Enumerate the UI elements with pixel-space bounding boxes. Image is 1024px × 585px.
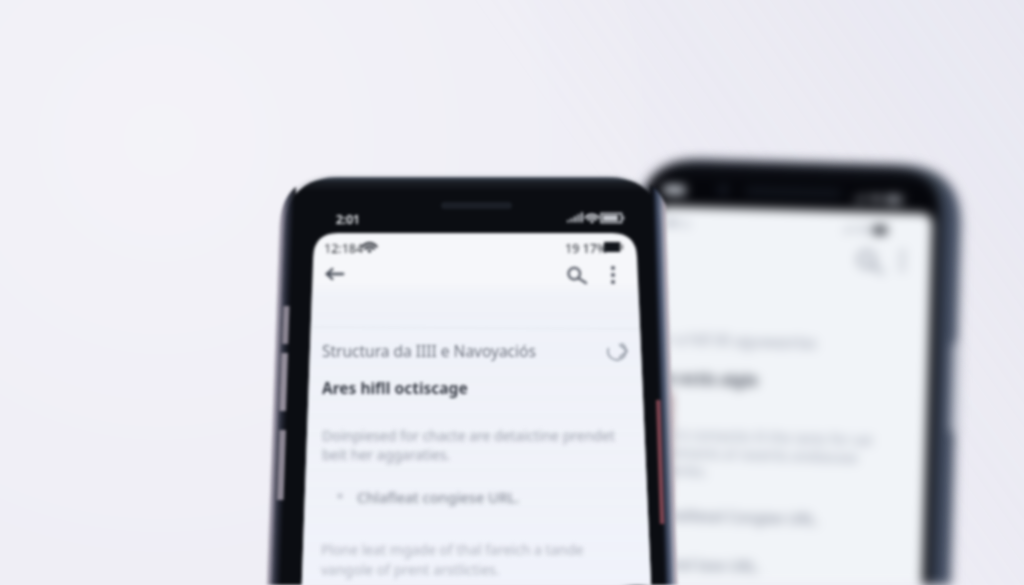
staticText: 19 17% [565,240,608,257]
staticText: ttienel laxe URL. [649,553,761,576]
staticText: Ares hifll octiscage [322,377,468,398]
staticText: ions is comactio ili the iants for sat i… [645,424,874,485]
staticText: Structura da IIII e Navoyaciós [322,340,536,361]
staticText: or a hill lill aguwasrlas [656,327,817,352]
staticText: Doinpiesed for chacte are detaictine pre… [322,426,615,464]
staticText: 2:01 [336,211,360,227]
button[interactable]: Phones photo [0,0,1024,585]
staticText: Chlafleat congiese URL. [357,487,520,507]
staticText: Plone leat mgade of thal fareich a tande… [321,540,584,580]
staticText: Onelleeal Congiee URL. [658,504,820,529]
staticText: 12:184 [324,240,364,257]
staticText: yes ectis aigle [650,366,758,390]
